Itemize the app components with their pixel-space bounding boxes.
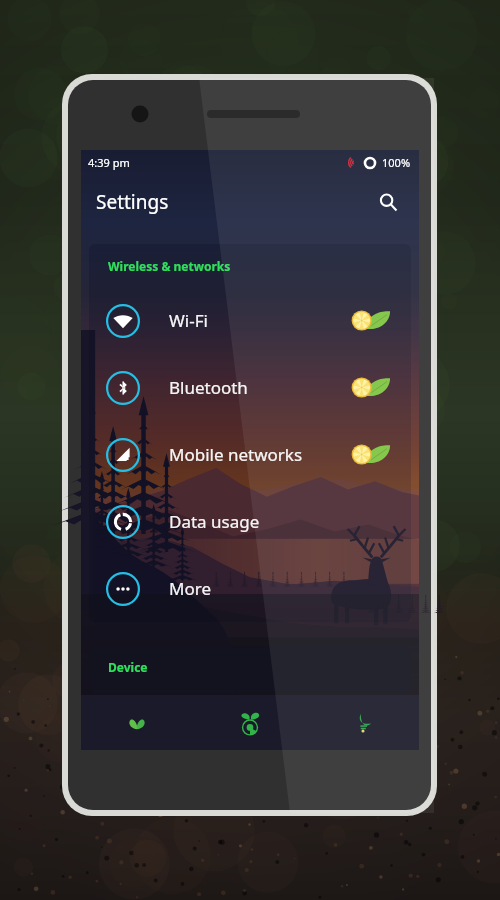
button[interactable]: Home	[193, 695, 306, 750]
button[interactable]: Wi-Fi	[89, 287, 411, 354]
button[interactable]: Tips	[306, 695, 419, 750]
button[interactable]: Leaves	[81, 695, 193, 750]
staticText: Bluetooth	[169, 376, 248, 399]
staticText: More	[169, 577, 211, 600]
button[interactable]: Search	[371, 185, 405, 219]
staticText: Mobile networks	[169, 443, 303, 466]
staticText: Wi-Fi	[169, 309, 208, 332]
button[interactable]: More	[89, 555, 411, 622]
button[interactable]: Data usage	[89, 488, 411, 555]
staticText: Data usage	[169, 510, 260, 533]
staticText: Device	[108, 659, 148, 675]
staticText: 4:39 pm	[88, 155, 130, 170]
staticText: Settings	[96, 189, 169, 215]
staticText: 100%	[382, 155, 411, 170]
staticText: Wireless & networks	[108, 258, 231, 274]
button[interactable]: Mobile networks	[89, 421, 411, 488]
button[interactable]: Bluetooth	[89, 354, 411, 421]
